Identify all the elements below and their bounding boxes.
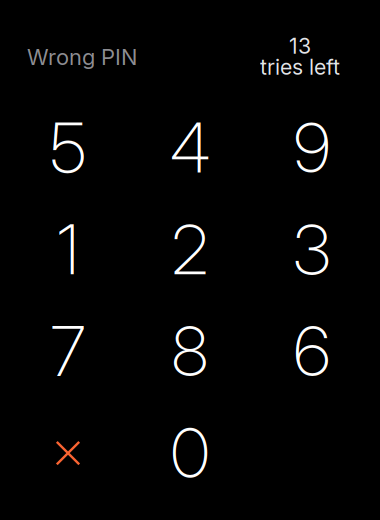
staticText: 13 [289, 33, 311, 59]
button[interactable]: 7 [7, 300, 129, 402]
staticText: 1 [57, 208, 79, 291]
staticText: 9 [293, 107, 330, 189]
button[interactable]: 1 [7, 199, 129, 300]
staticText: 0 [170, 412, 209, 494]
staticText: 4 [170, 107, 210, 189]
button[interactable]: Delete [7, 402, 129, 504]
button[interactable]: 4 [129, 97, 251, 199]
staticText: tries left [260, 54, 340, 80]
staticText: 5 [50, 107, 86, 189]
staticText: 6 [293, 310, 330, 392]
button[interactable]: 0 [129, 402, 251, 504]
staticText: 3 [293, 208, 331, 291]
button[interactable]: 9 [251, 97, 373, 199]
staticText: 8 [171, 310, 208, 392]
button[interactable]: 5 [7, 97, 129, 199]
staticText: 2 [171, 208, 208, 291]
button[interactable]: 6 [251, 300, 373, 402]
staticText: 7 [50, 310, 85, 392]
button[interactable]: 8 [129, 300, 251, 402]
staticText: Wrong PIN [27, 44, 137, 70]
button[interactable]: 3 [251, 199, 373, 300]
button[interactable]: 2 [129, 199, 251, 300]
